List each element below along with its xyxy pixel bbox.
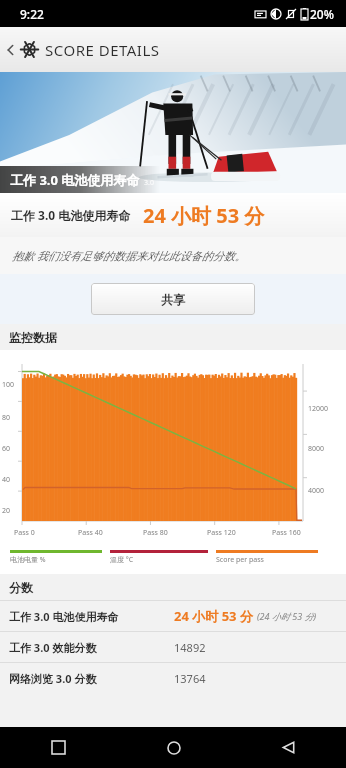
staticText: 24 小时 53 分	[174, 607, 253, 625]
staticText: 网络浏览 3.0 分数	[9, 671, 97, 686]
staticText: 工作 3.0 电池使用寿命	[10, 171, 140, 189]
staticText: 工作 3.0 效能分数	[9, 640, 97, 655]
staticText: Pass 0	[14, 528, 35, 538]
staticText: 24 小时 53 分	[143, 202, 265, 229]
other: Back	[4, 43, 18, 57]
staticText: SCORE DETAILS	[45, 40, 160, 60]
staticText: 监控数据	[9, 330, 57, 345]
staticText: Pass 40	[78, 528, 103, 538]
button[interactable]: 工作 3.0 电池使用寿命	[0, 601, 346, 631]
button[interactable]: Back	[0, 27, 346, 72]
staticText: 3.0	[144, 178, 154, 188]
staticText: 8000	[308, 444, 325, 454]
staticText: Pass 120	[207, 528, 236, 538]
staticText: (24 小时 53 分)	[257, 610, 317, 622]
staticText: 12000	[308, 404, 329, 414]
staticText: 电池电量 %	[10, 555, 46, 565]
staticText: 40	[2, 475, 11, 485]
staticText: 20%	[310, 6, 334, 22]
button[interactable]: Recents	[0, 727, 116, 768]
staticText: 工作 3.0 电池使用寿命	[9, 609, 119, 624]
staticText: 共享	[161, 292, 185, 307]
button[interactable]: Back	[231, 727, 346, 768]
staticText: 20	[2, 506, 11, 516]
staticText: 工作 3.0 电池使用寿命	[11, 207, 131, 223]
staticText: 13764	[174, 671, 206, 686]
staticText: 分数	[9, 580, 33, 595]
staticText: 9:22	[20, 6, 44, 22]
staticText: 温度 °C	[110, 555, 134, 565]
button[interactable]: Home	[116, 727, 231, 768]
button[interactable]: 网络浏览 3.0 分数	[0, 663, 346, 693]
button[interactable]: 工作 3.0 效能分数	[0, 632, 346, 662]
staticText: Pass 160	[272, 528, 301, 538]
staticText: 4000	[308, 486, 325, 496]
staticText: 60	[2, 444, 11, 454]
button[interactable]: 共享	[91, 283, 255, 315]
staticText: 抱歉 我们没有足够的数据来对比此设备的分数。	[12, 248, 246, 263]
staticText: 100	[2, 380, 15, 390]
staticText: 80	[2, 413, 11, 423]
staticText: Score per pass	[216, 555, 264, 565]
staticText: Pass 80	[143, 528, 168, 538]
staticText: 14892	[174, 640, 206, 655]
